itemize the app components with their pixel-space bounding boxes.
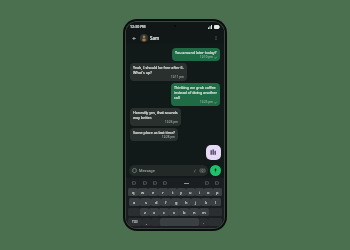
staticText: y xyxy=(180,190,183,195)
button[interactable] xyxy=(150,179,160,187)
button[interactable]: j xyxy=(191,198,201,206)
button[interactable]: ?123 xyxy=(128,218,142,226)
button[interactable]: d xyxy=(151,198,161,206)
button[interactable]: v xyxy=(169,208,179,216)
button[interactable]: h xyxy=(181,198,191,206)
staticText: o xyxy=(207,190,210,195)
button[interactable] xyxy=(170,179,202,187)
button[interactable]: f xyxy=(161,198,171,206)
staticText: 12:26 pm xyxy=(165,120,178,124)
staticText: Honestly yes, that sounds way better. xyxy=(133,110,178,120)
button[interactable]: k xyxy=(201,198,211,206)
staticText: e xyxy=(152,190,155,195)
staticText: Sam xyxy=(150,35,160,41)
button[interactable]: r xyxy=(158,188,168,196)
button[interactable]: Same place as last time? xyxy=(130,128,178,141)
button[interactable]: q xyxy=(128,188,138,196)
button[interactable]: i xyxy=(195,188,204,196)
staticText: m xyxy=(202,210,206,215)
button[interactable]: w xyxy=(138,188,148,196)
staticText: l xyxy=(215,200,217,205)
staticText: c xyxy=(163,210,165,215)
staticText: a xyxy=(133,200,136,205)
button[interactable]: Thinking we grab coffee instead of doing… xyxy=(171,83,220,106)
button[interactable]: m xyxy=(199,208,209,216)
button[interactable]: Voice message xyxy=(210,165,221,176)
button[interactable]: y xyxy=(177,188,186,196)
button[interactable]: a xyxy=(129,198,140,206)
staticText: i xyxy=(199,190,201,195)
button[interactable]: More options xyxy=(212,34,220,42)
staticText: 12:28 pm xyxy=(162,135,175,139)
button[interactable] xyxy=(202,179,212,187)
staticText: s xyxy=(145,200,147,205)
button[interactable]: b xyxy=(179,208,189,216)
button[interactable]: Back xyxy=(130,34,138,42)
button[interactable]: n xyxy=(189,208,199,216)
staticText: Same place as last time? xyxy=(133,130,175,135)
button[interactable]: o xyxy=(204,188,213,196)
staticText: Message xyxy=(139,168,155,173)
staticText: d xyxy=(155,200,158,205)
button[interactable]: e xyxy=(148,188,158,196)
button[interactable]: t xyxy=(168,188,177,196)
staticText: u xyxy=(189,190,192,195)
staticText: z xyxy=(144,210,146,215)
button[interactable]: s xyxy=(140,198,151,206)
staticText: Thinking we grab coffee instead of doing… xyxy=(174,85,217,100)
button[interactable]: Message xyxy=(129,165,208,176)
button[interactable]: g xyxy=(171,198,181,206)
staticText: q xyxy=(132,190,135,195)
button[interactable] xyxy=(128,179,139,187)
staticText: r xyxy=(162,190,164,195)
staticText: p xyxy=(216,190,219,195)
button[interactable] xyxy=(212,179,222,187)
staticText: 12:10 pm xyxy=(200,55,213,59)
staticText: x xyxy=(153,210,156,215)
button[interactable]: , xyxy=(142,218,151,226)
staticText: w xyxy=(141,190,145,195)
staticText: h xyxy=(185,200,188,205)
button[interactable]: . xyxy=(199,218,208,226)
staticText: g xyxy=(175,200,178,205)
staticText: f xyxy=(165,200,167,205)
staticText: 12:11 pm xyxy=(171,75,184,79)
staticText: k xyxy=(205,200,208,205)
button[interactable]: p xyxy=(213,188,222,196)
staticText: n xyxy=(193,210,196,215)
staticText: ?123 xyxy=(132,220,138,224)
button[interactable] xyxy=(139,179,150,187)
staticText: v xyxy=(173,210,176,215)
button[interactable]: Honestly yes, that sounds way better. xyxy=(130,108,181,126)
staticText: Yeah, I should be free after 6. What's u… xyxy=(133,65,184,75)
button[interactable]: l xyxy=(211,198,221,206)
staticText: . xyxy=(203,220,205,225)
staticText: j xyxy=(195,200,197,205)
button[interactable]: c xyxy=(159,208,169,216)
staticText: 12:30 PM xyxy=(130,24,146,29)
staticText: t xyxy=(172,190,174,195)
button[interactable]: z xyxy=(140,208,149,216)
button[interactable]: You around later today? xyxy=(172,48,220,61)
staticText: You around later today? xyxy=(175,50,217,55)
staticText: 12:25 pm xyxy=(200,100,213,104)
button[interactable]: u xyxy=(186,188,195,196)
staticText: , xyxy=(146,220,148,225)
button[interactable]: Compose xyxy=(206,145,221,160)
button[interactable] xyxy=(160,179,170,187)
button[interactable]: Yeah, I should be free after 6. What's u… xyxy=(130,63,187,81)
button[interactable]: x xyxy=(149,208,159,216)
staticText: b xyxy=(183,210,186,215)
